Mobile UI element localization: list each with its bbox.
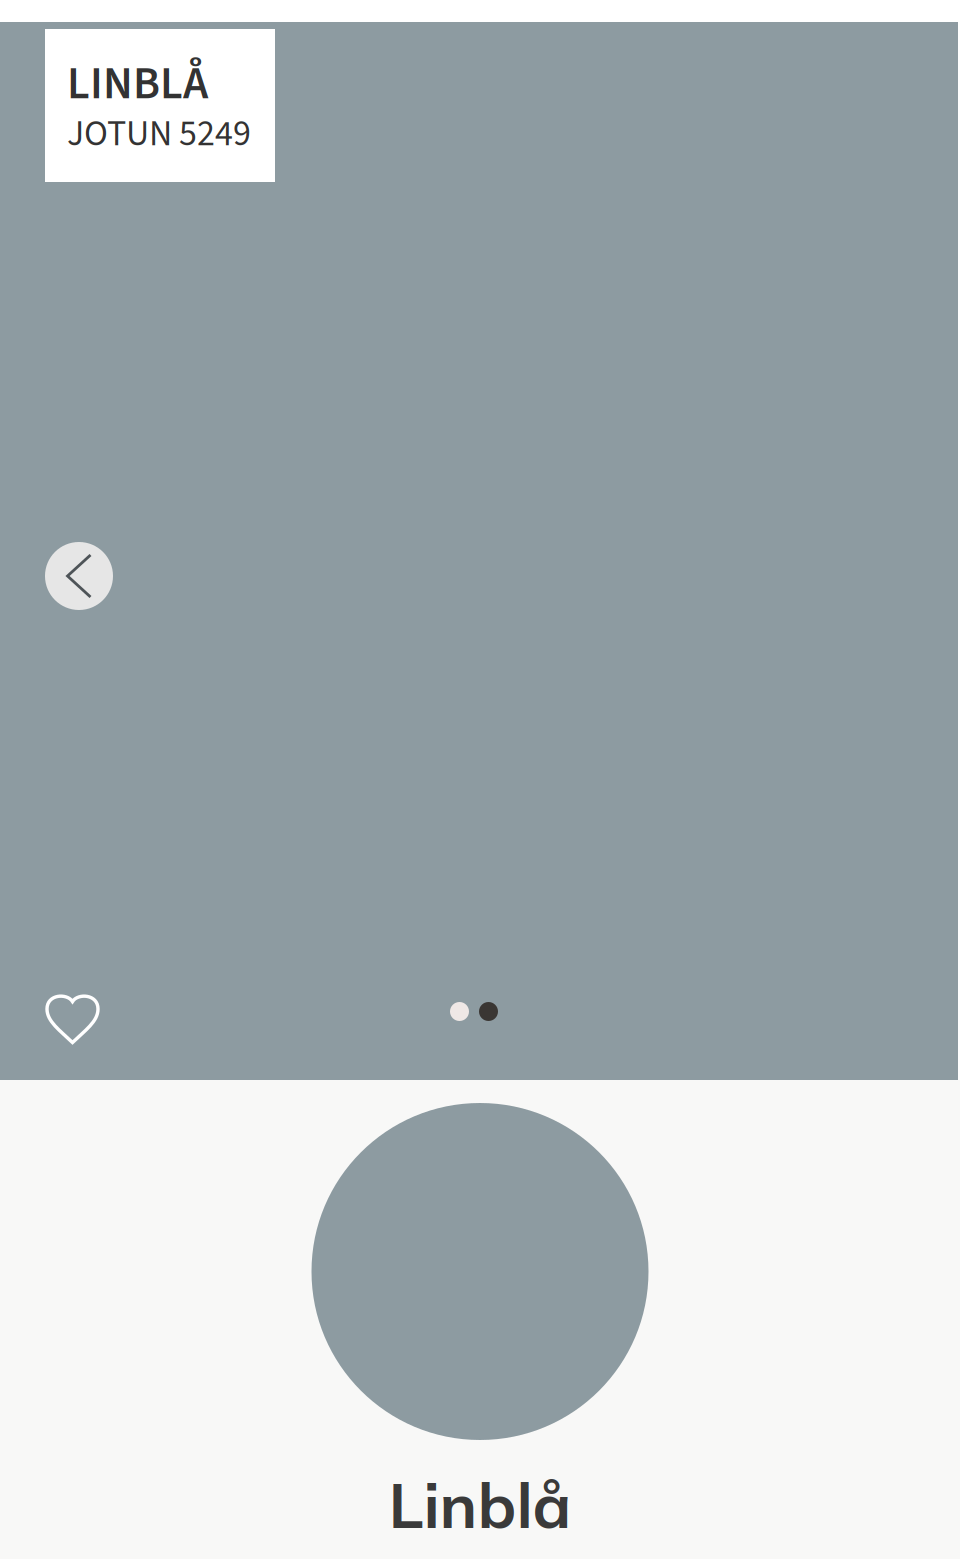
button[interactable]: Back <box>45 542 113 610</box>
staticText: LINBLÅ <box>67 52 208 116</box>
button[interactable]: Favourite <box>36 983 109 1054</box>
staticText: Linblå <box>388 1465 571 1544</box>
staticText: JOTUN 5249 <box>67 108 251 160</box>
